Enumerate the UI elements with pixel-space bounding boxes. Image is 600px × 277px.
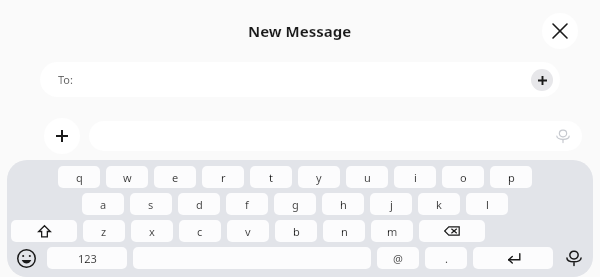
- button[interactable]: b: [275, 220, 317, 242]
- staticText: s: [148, 197, 154, 212]
- staticText: p: [508, 170, 515, 185]
- staticText: To:: [58, 72, 73, 87]
- button[interactable]: d: [178, 193, 220, 215]
- staticText: 123: [78, 251, 97, 266]
- button[interactable]: To:: [40, 62, 560, 97]
- button[interactable]: j: [370, 193, 412, 215]
- button[interactable]: h: [322, 193, 364, 215]
- staticText: k: [436, 197, 442, 212]
- staticText: t: [269, 170, 273, 185]
- button[interactable]: k: [418, 193, 460, 215]
- staticText: l: [486, 197, 489, 212]
- button[interactable]: i: [394, 166, 436, 188]
- staticText: n: [341, 224, 348, 239]
- button[interactable]: g: [274, 193, 316, 215]
- staticText: b: [293, 224, 300, 239]
- button[interactable]: u: [346, 166, 388, 188]
- button[interactable]: Emoji: [13, 247, 39, 269]
- staticText: j: [390, 197, 393, 212]
- staticText: New Message: [248, 21, 352, 41]
- staticText: q: [76, 170, 83, 185]
- staticText: c: [197, 224, 203, 239]
- button[interactable]: l: [466, 193, 508, 215]
- button[interactable]: Voice typing: [561, 247, 587, 269]
- button[interactable]: v: [227, 220, 269, 242]
- button[interactable]: m: [371, 220, 413, 242]
- button[interactable]: r: [202, 166, 244, 188]
- staticText: v: [245, 224, 251, 239]
- button[interactable]: Add attachment: [44, 118, 80, 154]
- button[interactable]: n: [323, 220, 365, 242]
- staticText: m: [387, 224, 398, 239]
- staticText: y: [316, 170, 322, 185]
- button[interactable]: s: [130, 193, 172, 215]
- button[interactable]: f: [226, 193, 268, 215]
- staticText: h: [340, 197, 347, 212]
- button[interactable]: c: [179, 220, 221, 242]
- button[interactable]: e: [154, 166, 196, 188]
- button[interactable]: z: [83, 220, 125, 242]
- other: Voice input: [554, 127, 572, 145]
- button[interactable]: t: [250, 166, 292, 188]
- button[interactable]: x: [131, 220, 173, 242]
- staticText: u: [364, 170, 371, 185]
- button[interactable]: 123: [47, 247, 127, 269]
- button[interactable]: Enter: [473, 247, 553, 269]
- button[interactable]: @: [377, 247, 419, 269]
- button[interactable]: o: [442, 166, 484, 188]
- button[interactable]: Shift: [11, 220, 77, 242]
- staticText: r: [221, 170, 226, 185]
- button[interactable]: y: [298, 166, 340, 188]
- button[interactable]: Add recipient: [531, 69, 553, 91]
- staticText: a: [100, 197, 107, 212]
- button[interactable]: Close: [542, 13, 578, 49]
- button[interactable]: w: [106, 166, 148, 188]
- staticText: x: [149, 224, 155, 239]
- button[interactable]: q: [58, 166, 100, 188]
- staticText: d: [196, 197, 203, 212]
- staticText: @: [393, 251, 403, 266]
- staticText: e: [172, 170, 179, 185]
- staticText: .: [445, 251, 448, 266]
- staticText: g: [292, 197, 299, 212]
- button[interactable]: a: [82, 193, 124, 215]
- staticText: w: [123, 170, 132, 185]
- button[interactable]: p: [490, 166, 532, 188]
- staticText: o: [460, 170, 467, 185]
- button[interactable]: Backspace: [419, 220, 485, 242]
- staticText: i: [414, 170, 417, 185]
- button[interactable]: .: [425, 247, 467, 269]
- staticText: f: [245, 197, 249, 212]
- staticText: z: [101, 224, 107, 239]
